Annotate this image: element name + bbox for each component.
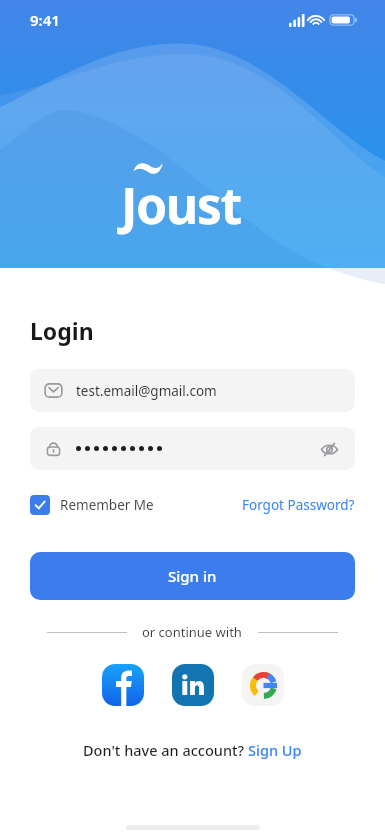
button[interactable]: Continue with Google — [241, 663, 285, 707]
staticText: 9:41 — [30, 10, 60, 30]
staticText: Sign in — [168, 566, 217, 586]
staticText: test.email@gmail.com — [76, 382, 217, 400]
button[interactable]: Continue with LinkedIn — [171, 663, 215, 707]
button[interactable]: Show password — [30, 427, 355, 470]
button[interactable]: Sign in — [30, 552, 355, 600]
staticText: Login — [30, 315, 94, 346]
button[interactable]: Forgot Password? — [242, 496, 355, 514]
button[interactable]: Sign Up — [248, 740, 302, 760]
button[interactable]: Continue with Facebook — [101, 663, 145, 707]
staticText: or continue with — [142, 623, 242, 641]
staticText: Don't have an account? — [83, 740, 248, 760]
button[interactable]: Show password — [317, 437, 341, 461]
staticText: Remember Me — [60, 496, 154, 514]
button[interactable]: test.email@gmail.com — [30, 369, 355, 412]
staticText: Joust — [121, 171, 241, 239]
button[interactable]: Remember Me — [30, 495, 154, 515]
